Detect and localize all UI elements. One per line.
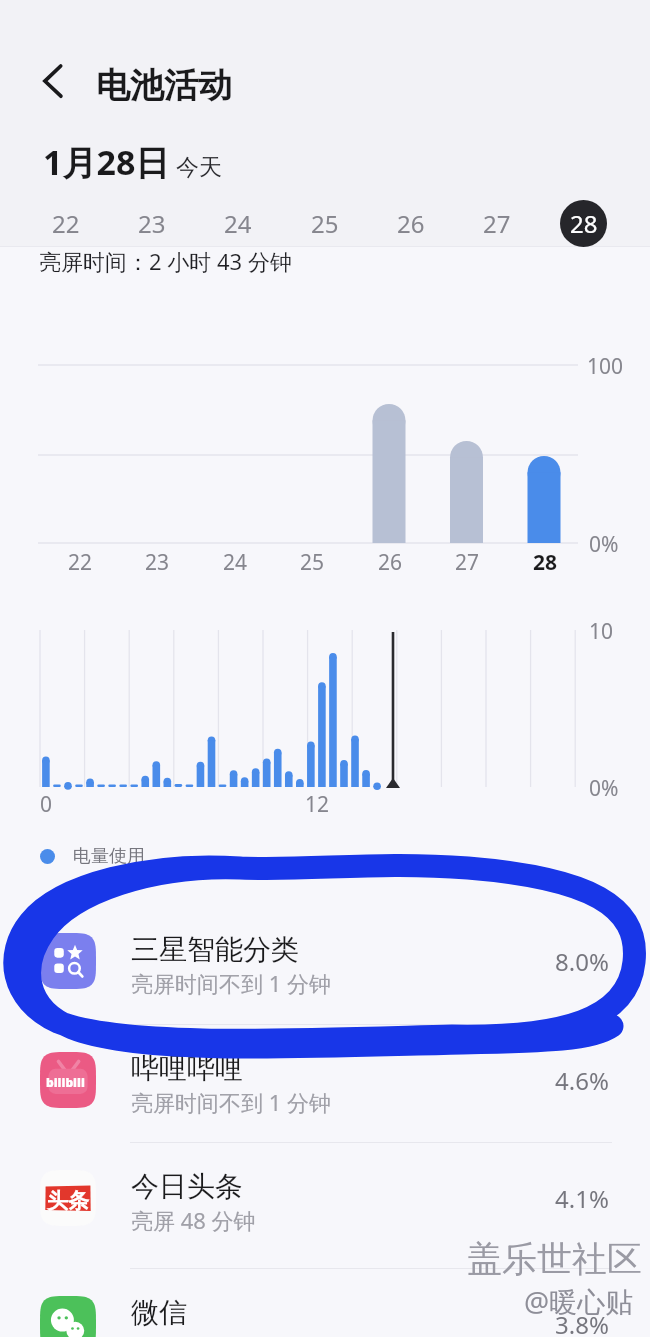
staticText: 28 xyxy=(533,548,558,577)
staticText: 22 xyxy=(52,207,80,240)
staticText: 24 xyxy=(223,548,248,577)
button[interactable]: 25 xyxy=(282,198,368,248)
staticText: 25 xyxy=(300,548,325,577)
staticText: bilibili xyxy=(46,1074,85,1090)
staticText: 26 xyxy=(397,207,425,240)
button[interactable]: 22 xyxy=(23,198,109,248)
staticText: 23 xyxy=(145,548,170,577)
staticText: 电池活动 xyxy=(96,64,232,107)
staticText: 亮屏 48 分钟 xyxy=(131,1205,256,1235)
staticText: 0 xyxy=(40,790,53,819)
button[interactable]: Back xyxy=(28,56,80,108)
staticText: 12 xyxy=(305,790,330,819)
staticText: 1月28日 xyxy=(43,139,170,185)
staticText: 27 xyxy=(483,207,511,240)
staticText: 亮屏时间：2 小时 43 分钟 xyxy=(39,246,292,276)
staticText: 微信 xyxy=(131,1295,187,1330)
staticText: 10 xyxy=(589,617,614,646)
button[interactable]: 微信 xyxy=(0,1268,650,1337)
staticText: 盖乐世社区 xyxy=(467,1237,642,1281)
button[interactable]: 26 xyxy=(368,198,454,248)
button[interactable]: bilibili xyxy=(0,1024,650,1142)
staticText: 25 xyxy=(311,207,339,240)
staticText: 头条 xyxy=(47,1188,89,1214)
staticText: 24 xyxy=(224,207,252,240)
button[interactable]: 28 xyxy=(540,198,626,248)
button[interactable]: 23 xyxy=(109,198,195,248)
staticText: 8.0% xyxy=(555,945,609,978)
staticText: 3.8% xyxy=(555,1308,609,1337)
button[interactable]: 24 xyxy=(195,198,281,248)
staticText: 4.1% xyxy=(555,1182,609,1215)
staticText: 三星智能分类 xyxy=(131,932,299,967)
staticText: @暖心贴 xyxy=(524,1282,634,1320)
button[interactable]: 三星智能分类 xyxy=(0,905,650,1023)
staticText: 27 xyxy=(455,548,480,577)
staticText: 23 xyxy=(138,207,166,240)
staticText: 亮屏时间不到 1 分钟 xyxy=(131,968,332,998)
staticText: 今天 xyxy=(176,153,222,182)
staticText: 28 xyxy=(570,207,598,240)
staticText: 哔哩哔哩 xyxy=(131,1051,243,1086)
staticText: 0% xyxy=(589,530,619,559)
staticText: 电量使用 xyxy=(73,845,145,868)
button[interactable]: 头条 xyxy=(0,1142,650,1260)
staticText: 26 xyxy=(378,548,403,577)
staticText: 22 xyxy=(68,548,93,577)
staticText: 100 xyxy=(587,352,624,381)
staticText: 0% xyxy=(589,774,619,803)
button[interactable]: 27 xyxy=(454,198,540,248)
staticText: 4.6% xyxy=(555,1064,609,1097)
staticText: 亮屏时间不到 1 分钟 xyxy=(131,1087,332,1117)
staticText: 今日头条 xyxy=(131,1169,243,1204)
